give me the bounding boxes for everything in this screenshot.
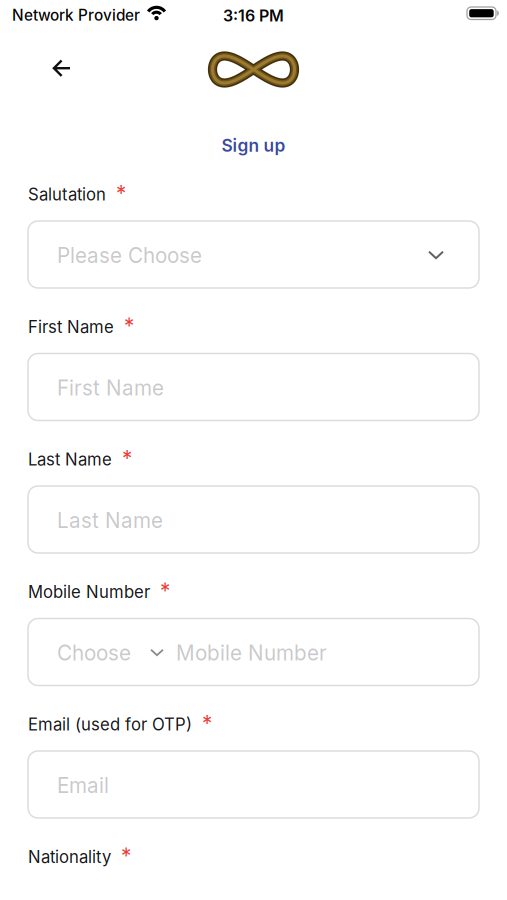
staticText: Choose <box>57 640 131 665</box>
staticText: Salutation <box>28 184 106 205</box>
staticText: Email (used for OTP) <box>28 714 192 735</box>
staticText: Mobile Number <box>176 640 327 665</box>
staticText: * <box>160 578 170 603</box>
staticText: First Name <box>28 317 114 337</box>
staticText: Mobile Number <box>28 582 150 602</box>
button[interactable]: First Name <box>28 353 479 420</box>
staticText: Nationality <box>28 847 111 867</box>
staticText: Email <box>57 773 109 798</box>
staticText: Last Name <box>28 449 112 470</box>
staticText: * <box>202 711 212 736</box>
staticText: * <box>121 843 131 868</box>
button[interactable]: Choose <box>28 618 479 685</box>
button[interactable]: Email <box>28 751 479 818</box>
staticText: * <box>124 313 134 338</box>
button[interactable]: Last Name <box>28 486 479 553</box>
staticText: First Name <box>57 375 164 400</box>
staticText: Please Choose <box>57 243 202 268</box>
staticText: Network Provider <box>12 6 140 25</box>
button[interactable]: Back <box>45 51 79 85</box>
staticText: 3:16 PM <box>223 6 284 25</box>
button[interactable]: Please Choose <box>28 221 479 288</box>
button[interactable]: Sign up <box>153 135 353 156</box>
staticText: * <box>116 181 126 206</box>
staticText: Last Name <box>57 508 163 533</box>
staticText: * <box>122 446 132 471</box>
staticText: Sign up <box>221 135 285 156</box>
